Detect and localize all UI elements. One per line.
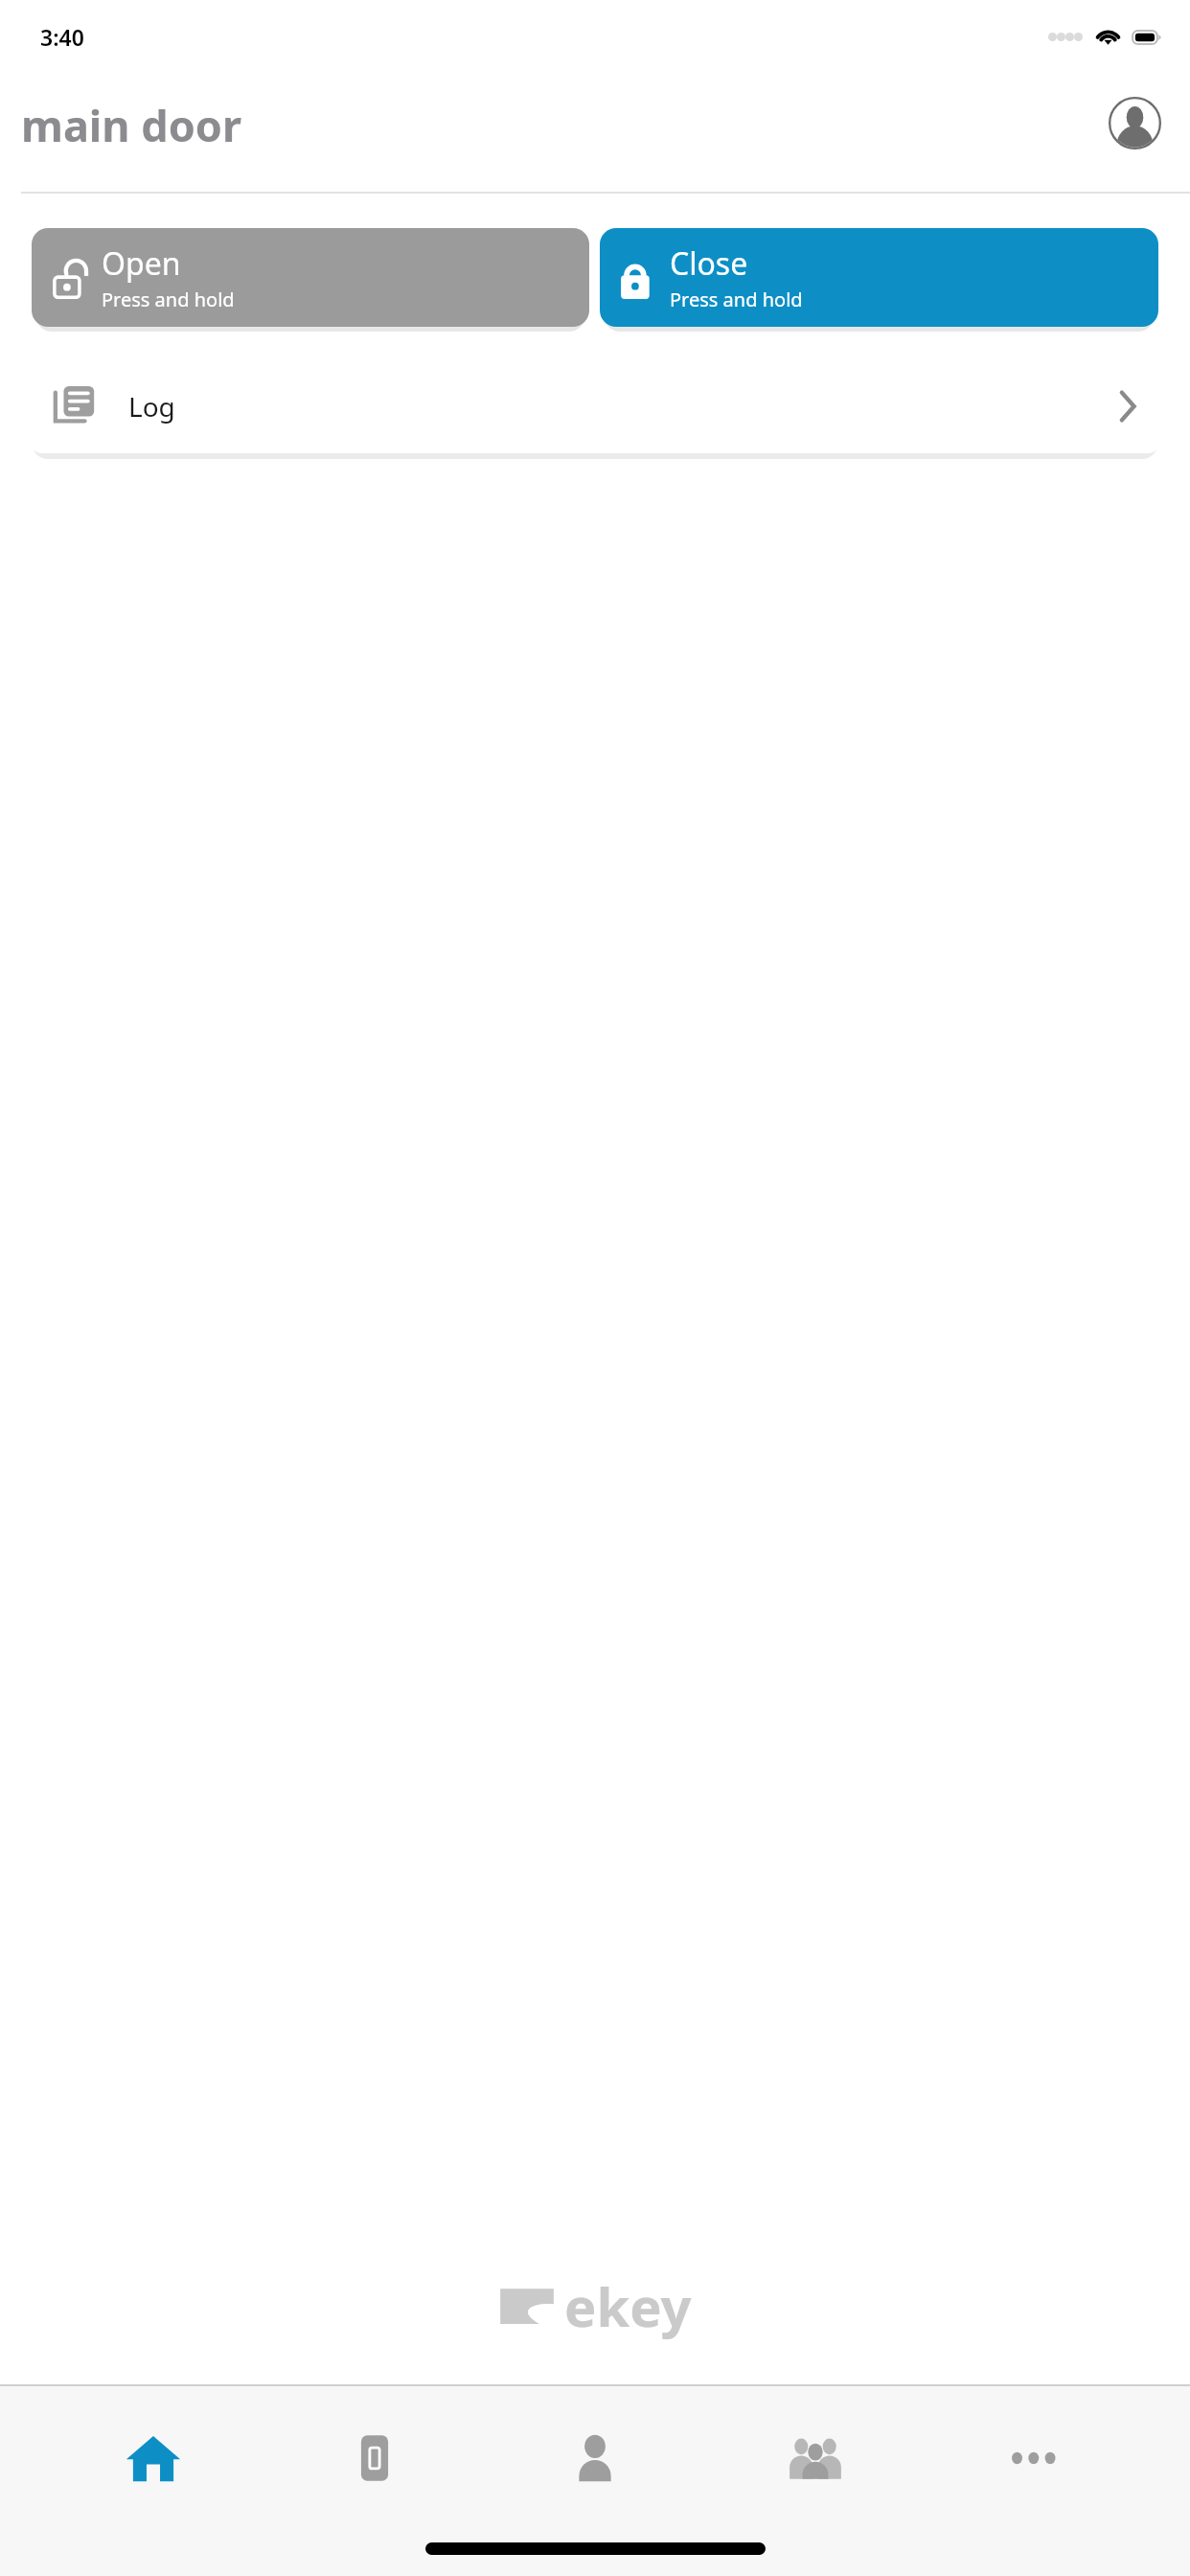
staticText: Open xyxy=(102,242,181,285)
staticText: Press and hold xyxy=(102,287,235,312)
button[interactable]: Devices xyxy=(308,2401,442,2516)
staticText: Close xyxy=(670,242,748,285)
button[interactable]: Profile xyxy=(528,2401,662,2516)
button[interactable]: Home xyxy=(86,2401,220,2516)
staticText: 3:40 xyxy=(40,22,84,52)
staticText: main door xyxy=(21,96,242,154)
button[interactable]: Log xyxy=(27,359,1163,453)
staticText: Press and hold xyxy=(670,287,803,312)
button[interactable]: Open door xyxy=(32,228,589,327)
button[interactable]: More xyxy=(970,2401,1104,2516)
staticText: ekey xyxy=(564,2269,692,2342)
button[interactable]: Users xyxy=(748,2401,882,2516)
button[interactable]: Close door xyxy=(600,228,1158,327)
staticText: Log xyxy=(128,388,175,425)
button[interactable]: Profile xyxy=(1109,97,1161,149)
